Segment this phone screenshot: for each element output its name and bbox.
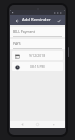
button[interactable]: 08:15 PM <box>12 62 63 71</box>
staticText: PAYS <box>13 41 21 46</box>
button[interactable]: BILL Payment <box>10 27 65 37</box>
button[interactable]: Save <box>55 17 62 24</box>
button[interactable]: Home <box>34 121 41 128</box>
staticText: Add Reminder <box>22 17 51 23</box>
staticText: 9/12/2018 <box>29 53 46 58</box>
button[interactable]: Back <box>13 17 20 24</box>
button[interactable]: Back <box>19 121 26 128</box>
button[interactable]: 9/12/2018 <box>12 51 63 60</box>
staticText: BILL Payment <box>13 29 35 34</box>
staticText: 08:15 PM <box>30 64 45 69</box>
button[interactable]: PAYS <box>10 39 65 49</box>
button[interactable]: Recents <box>50 121 57 128</box>
